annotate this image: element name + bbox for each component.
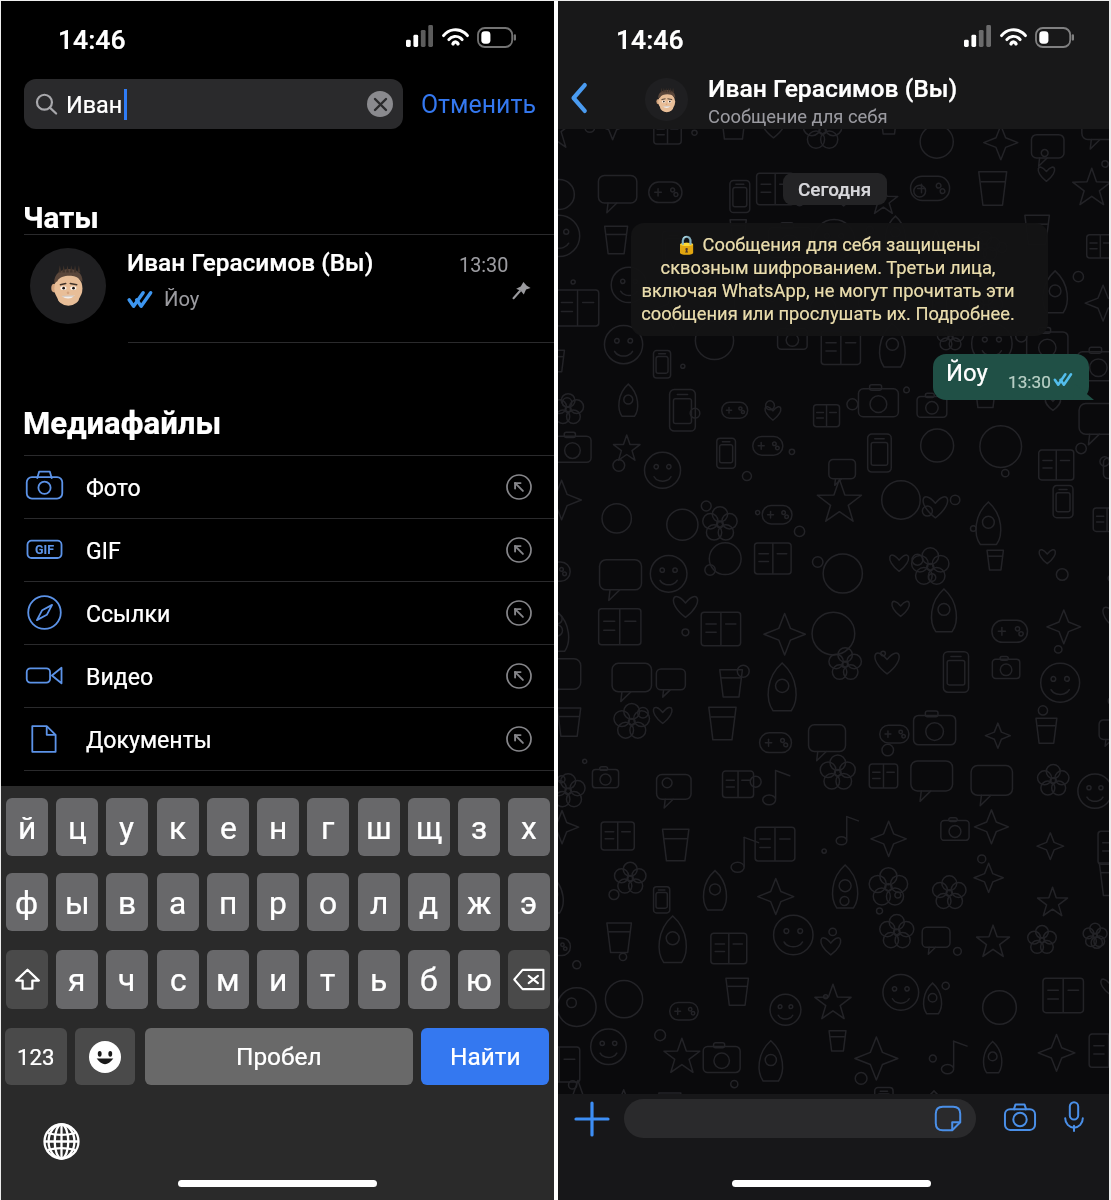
staticText: Фото — [86, 475, 141, 502]
button[interactable]: п — [207, 873, 249, 931]
button[interactable]: Иван Герасимов (Вы) — [0, 234, 554, 343]
button[interactable]: у — [106, 798, 148, 856]
staticText: ь — [370, 961, 388, 998]
button[interactable]: ц — [56, 798, 98, 856]
staticText: Ссылки — [86, 601, 171, 628]
button[interactable]: Пробел — [145, 1028, 413, 1085]
button[interactable]: к — [157, 798, 199, 856]
button[interactable]: ю — [458, 950, 500, 1009]
staticText: е — [220, 809, 237, 846]
button[interactable]: т — [307, 950, 349, 1009]
button[interactable]: ф — [6, 873, 48, 931]
button[interactable] — [6, 950, 48, 1009]
button[interactable]: й — [6, 798, 48, 856]
staticText: Найти — [450, 1042, 521, 1071]
staticText: б — [420, 961, 438, 998]
button[interactable]: ш — [358, 798, 400, 856]
button[interactable]: Видео — [0, 644, 554, 707]
staticText: к — [169, 809, 187, 846]
staticText: ф — [15, 884, 39, 921]
button[interactable]: Back — [558, 74, 600, 122]
button[interactable]: я — [56, 950, 98, 1009]
button[interactable]: 123 — [5, 1028, 67, 1085]
button[interactable]: г — [307, 798, 349, 856]
button[interactable]: Attach — [570, 1097, 614, 1141]
button[interactable]: ь — [358, 950, 400, 1009]
staticText: Медиафайлы — [23, 405, 222, 441]
button[interactable]: Ссылки — [0, 581, 554, 644]
button[interactable]: а — [157, 873, 199, 931]
button[interactable]: Camera — [998, 1095, 1041, 1138]
button[interactable]: Фото — [0, 455, 554, 518]
button[interactable]: Voice message — [1052, 1095, 1095, 1138]
staticText: 13:30 — [1008, 372, 1051, 392]
button[interactable]: б — [408, 950, 450, 1009]
staticText: Отменить — [421, 90, 536, 119]
button[interactable]: д — [408, 873, 450, 931]
staticText: Сегодня — [798, 178, 872, 200]
button[interactable]: Документы — [0, 707, 554, 770]
button[interactable]: и — [257, 950, 299, 1009]
staticText: 14:46 — [616, 24, 684, 55]
staticText: ч — [118, 961, 136, 998]
button[interactable]: Отменить — [409, 79, 548, 129]
staticText: х — [521, 809, 537, 846]
button[interactable]: Change keyboard language — [43, 1123, 80, 1160]
button[interactable]: х — [508, 798, 550, 856]
button[interactable] — [624, 1099, 976, 1138]
button[interactable]: GIF — [0, 518, 554, 581]
staticText: ц — [68, 809, 87, 846]
staticText: й — [18, 809, 37, 846]
button[interactable]: з — [458, 798, 500, 856]
button[interactable]: ж — [458, 873, 500, 931]
button[interactable]: ч — [106, 950, 148, 1009]
button[interactable]: Backspace — [508, 950, 550, 1009]
button[interactable]: ы — [56, 873, 98, 931]
button[interactable]: о — [307, 873, 349, 931]
staticText: а — [169, 884, 187, 921]
staticText: ш — [366, 809, 392, 846]
staticText: з — [471, 809, 488, 846]
staticText: и — [269, 961, 288, 998]
staticText: р — [269, 884, 287, 921]
staticText: Йоу — [946, 359, 988, 387]
button[interactable]: Иван — [24, 79, 403, 129]
staticText: т — [320, 961, 336, 998]
staticText: Видео — [86, 664, 154, 691]
button[interactable]: е — [207, 798, 249, 856]
staticText: Пробел — [236, 1042, 322, 1071]
staticText: Иван Герасимов (Вы) — [708, 74, 958, 103]
button[interactable]: с — [157, 950, 199, 1009]
button[interactable]: р — [257, 873, 299, 931]
staticText: о — [319, 884, 338, 921]
staticText: н — [269, 809, 288, 846]
staticText: в — [118, 884, 137, 921]
staticText: п — [219, 884, 238, 921]
staticText: 🔒 Сообщения для себя защищены сквозным ш… — [641, 234, 1015, 325]
staticText: д — [419, 884, 439, 921]
button[interactable]: Найти — [421, 1028, 549, 1085]
staticText: Йоу — [164, 287, 200, 311]
staticText: с — [170, 961, 187, 998]
button[interactable]: э — [508, 873, 550, 931]
button[interactable]: в — [106, 873, 148, 931]
staticText: 14:46 — [58, 24, 126, 55]
button[interactable]: л — [358, 873, 400, 931]
staticText: GIF — [86, 538, 121, 565]
staticText: щ — [416, 809, 443, 846]
staticText: ы — [65, 884, 90, 921]
staticText: э — [520, 884, 538, 921]
staticText: я — [68, 961, 86, 998]
staticText: л — [370, 884, 389, 921]
button[interactable]: Clear search — [367, 91, 393, 117]
staticText: у — [119, 809, 135, 846]
staticText: GIF — [35, 542, 55, 557]
staticText: Сообщение для себя — [708, 106, 888, 128]
staticText: м — [216, 961, 240, 998]
button[interactable]: Emoji keyboard — [75, 1028, 135, 1085]
staticText: г — [321, 809, 335, 846]
button[interactable]: щ — [408, 798, 450, 856]
button[interactable]: м — [207, 950, 249, 1009]
button[interactable]: н — [257, 798, 299, 856]
staticText: Чаты — [23, 201, 99, 236]
